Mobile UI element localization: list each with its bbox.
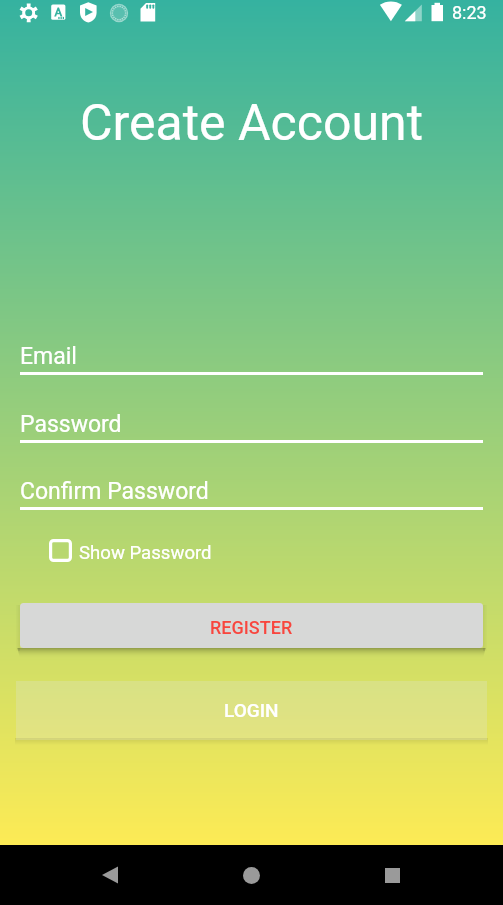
staticText: 8:23 [452,2,487,23]
staticText: LOGIN [224,699,279,721]
staticText: Email [20,343,77,370]
button[interactable]: Show Password [49,539,212,562]
staticText: Show Password [79,542,212,564]
button[interactable]: LOGIN [16,681,487,740]
button[interactable]: Confirm Password [20,478,483,505]
staticText: REGISTER [210,617,293,638]
button[interactable]: Email [20,343,483,370]
button[interactable]: REGISTER [20,603,483,648]
staticText: Confirm Password [20,478,209,505]
button[interactable]: Home [226,850,276,900]
button[interactable]: Recents [367,850,417,900]
button[interactable]: Password [20,411,483,438]
staticText: Create Account [0,94,503,153]
button[interactable]: Back [85,850,135,900]
staticText: Password [20,411,122,438]
